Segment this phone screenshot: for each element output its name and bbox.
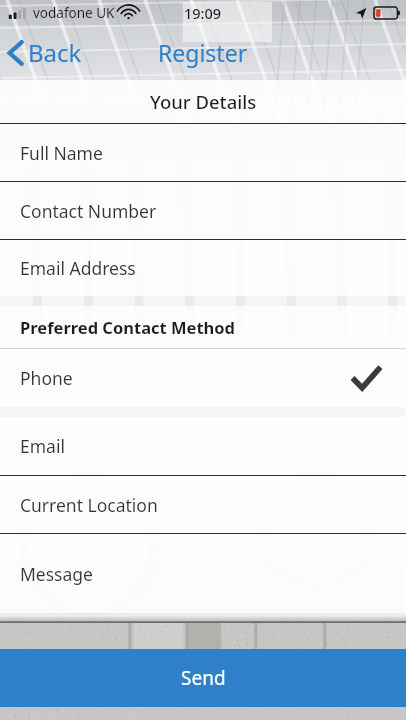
button[interactable]: Full Name — [0, 124, 406, 181]
button[interactable]: Preferred Contact Method — [0, 306, 406, 348]
staticText: Preferred Contact Method — [20, 316, 236, 338]
staticText: vodafone UK — [33, 4, 115, 22]
button[interactable]: Phone — [0, 349, 406, 407]
staticText: Register — [158, 37, 248, 68]
button[interactable]: Send — [0, 649, 406, 707]
button[interactable]: Message — [0, 534, 406, 613]
other: Selected — [352, 365, 381, 391]
staticText: Your Details — [150, 89, 257, 114]
staticText: Phone — [20, 366, 73, 390]
button[interactable]: Back — [0, 30, 94, 75]
staticText: Full Name — [20, 141, 103, 165]
staticText: Message — [20, 562, 93, 586]
staticText: Back — [28, 36, 82, 69]
button[interactable]: Contact Number — [0, 182, 406, 239]
staticText: Contact Number — [20, 199, 157, 223]
button[interactable]: Email — [0, 417, 406, 475]
staticText: Email Address — [20, 256, 136, 280]
staticText: 19:09 — [184, 3, 222, 23]
button[interactable]: Current Location — [0, 476, 406, 533]
button[interactable]: Email Address — [0, 240, 406, 296]
staticText: Send — [181, 665, 226, 691]
staticText: Current Location — [20, 493, 158, 517]
staticText: Email — [20, 434, 65, 458]
